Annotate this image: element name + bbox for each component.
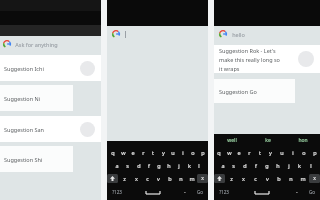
staticText: Suggestion Ni [4,95,41,102]
staticText: l [198,162,200,169]
button[interactable]: h [164,159,174,172]
button[interactable]: . [178,185,192,198]
button[interactable]: Suggestion Go [214,79,320,103]
button[interactable]: Suggestion Ichi [0,55,101,81]
button[interactable]: q [107,146,118,159]
button[interactable]: i [178,146,188,159]
button[interactable]: Backspace [309,174,320,183]
button[interactable]: Go [304,185,320,198]
button[interactable]: i [287,146,298,159]
button[interactable]: c [249,172,261,185]
button[interactable]: z [118,172,130,185]
button[interactable]: f [250,159,261,172]
button[interactable]: u [276,146,287,159]
button[interactable]: Go [192,185,208,198]
button[interactable]: o [188,146,198,159]
button[interactable]: Shift [214,174,225,183]
button[interactable]: j [283,159,294,172]
button[interactable]: d [239,159,250,172]
button[interactable]: w [224,146,234,159]
button[interactable]: t [254,146,265,159]
staticText: it wraps [219,65,240,72]
button[interactable]: r [244,146,254,159]
button[interactable]: Ask for anything [0,36,101,52]
staticText: o [191,149,195,156]
button[interactable]: g [154,159,164,172]
staticText: x [313,175,316,182]
staticText: l [310,162,312,169]
button[interactable]: y [158,146,168,159]
button[interactable]: t [148,146,158,159]
button[interactable]: e [128,146,138,159]
button[interactable]: o [298,146,309,159]
button[interactable]: a [218,159,228,172]
staticText: n [289,175,293,182]
button[interactable]: m [297,172,309,185]
button[interactable]: s [228,159,239,172]
staticText: t [152,149,154,156]
button[interactable]: v [261,172,273,185]
button[interactable]: s [122,159,133,172]
button[interactable]: l [305,159,316,172]
button[interactable]: k [294,159,305,172]
button[interactable]: well [214,134,250,146]
staticText: ?123 [219,189,229,195]
button[interactable]: hello [214,26,320,42]
button[interactable]: k [184,159,194,172]
button[interactable]: x [130,172,142,185]
button[interactable]: Space [127,185,178,198]
staticText: j [178,162,180,169]
staticText: p [201,149,205,156]
staticText: ?123 [112,189,122,195]
button[interactable]: Suggestion Shi [0,146,101,172]
staticText: Go [309,189,315,195]
staticText: s [126,162,129,169]
button[interactable]: e [234,146,244,159]
staticText: k [298,162,301,169]
button[interactable]: Shift [107,174,118,183]
button[interactable]: b [273,172,285,185]
button[interactable]: z [225,172,237,185]
button[interactable]: u [168,146,178,159]
button[interactable]: r [138,146,148,159]
button[interactable]: . [290,185,304,198]
button[interactable]: y [265,146,276,159]
button[interactable] [107,26,208,42]
button[interactable]: Suggestion Ni [0,85,101,111]
button[interactable]: v [153,172,164,185]
button[interactable]: ?123 [214,185,234,198]
button[interactable]: hon [285,134,320,146]
button[interactable]: Space [234,185,290,198]
button[interactable]: h [272,159,283,172]
button[interactable]: w [118,146,128,159]
button[interactable]: Suggestion Rok - Let's [214,45,320,73]
staticText: m [189,175,195,182]
button[interactable]: x [237,172,249,185]
button[interactable]: c [142,172,153,185]
staticText: g [265,162,269,169]
button[interactable]: d [133,159,144,172]
button[interactable]: Suggestion San [0,116,101,142]
staticText: o [302,149,306,156]
button[interactable]: j [174,159,184,172]
staticText: w [121,149,126,156]
button[interactable]: b [164,172,175,185]
button[interactable]: f [144,159,154,172]
staticText: Suggestion Ichi [4,65,44,72]
button[interactable]: q [214,146,224,159]
button[interactable]: Backspace [197,174,208,183]
button[interactable]: ?123 [107,185,127,198]
staticText: q [111,149,115,156]
button[interactable]: a [111,159,122,172]
button[interactable]: p [198,146,208,159]
button[interactable]: n [175,172,186,185]
staticText: Suggestion Go [219,88,257,95]
button[interactable]: ke [250,134,285,146]
button[interactable]: p [309,146,320,159]
staticText: v [157,175,160,182]
button[interactable]: g [261,159,272,172]
button[interactable]: n [285,172,297,185]
staticText: a [221,162,225,169]
button[interactable]: m [186,172,197,185]
button[interactable]: l [194,159,204,172]
